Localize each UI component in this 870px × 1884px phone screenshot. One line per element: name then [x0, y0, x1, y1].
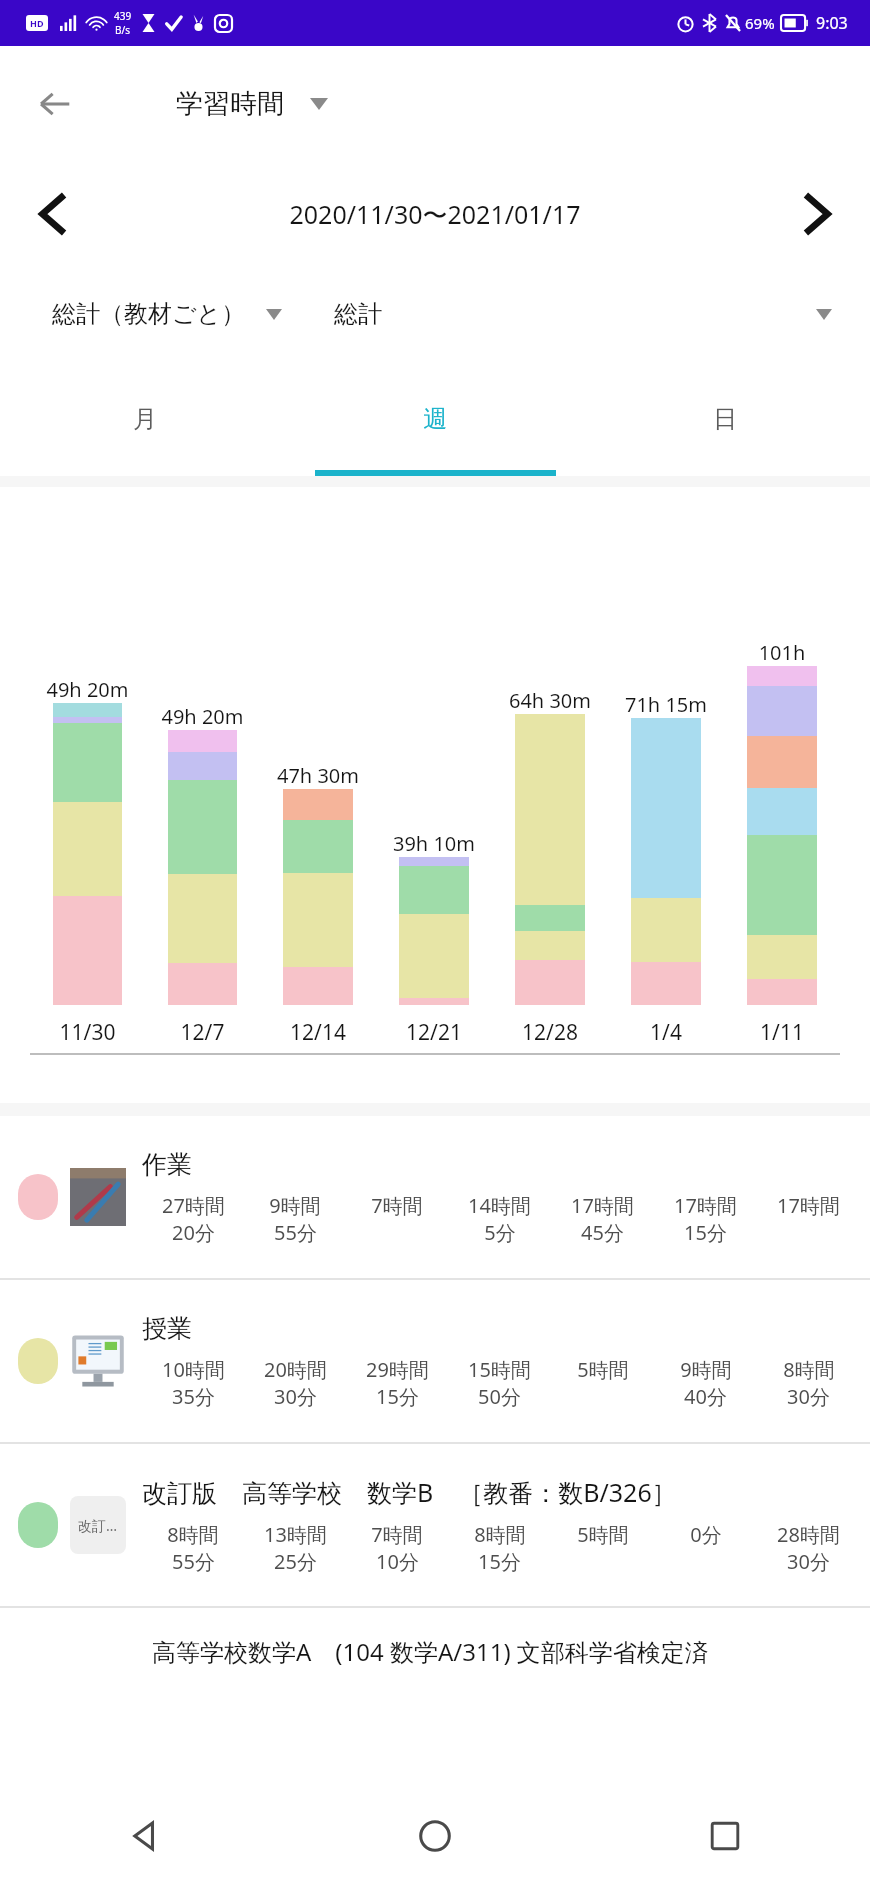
staticText: 55分 — [274, 1219, 317, 1246]
button[interactable]: Home — [290, 1788, 580, 1884]
staticText: 総計（教材ごと） — [52, 299, 246, 329]
staticText: 25分 — [274, 1548, 317, 1575]
staticText: 12/7 — [145, 1018, 260, 1047]
staticText: 30分 — [274, 1383, 317, 1410]
staticText: 28時間 — [777, 1521, 840, 1548]
button[interactable]: 総計（教材ごと） — [52, 299, 282, 329]
staticText: 39h 10m — [376, 830, 492, 857]
staticText: 15分 — [376, 1383, 419, 1410]
staticText: 高等学校数学A (104 数学A/311) 文部科学省検定済 — [152, 1635, 709, 1668]
staticText: 15分 — [478, 1548, 521, 1575]
staticText: 7時間 — [371, 1192, 423, 1219]
staticText: 改訂版 高等学校 数学B ［教番：数B/326］ — [142, 1475, 677, 1509]
staticText: HD — [30, 17, 44, 29]
staticText: 7時間 — [371, 1521, 423, 1548]
staticText: 17時間 — [674, 1192, 737, 1219]
staticText: 20時間 — [264, 1356, 327, 1383]
staticText: 8時間 — [783, 1356, 835, 1383]
staticText: 9時間 — [680, 1356, 732, 1383]
staticText: 授業 — [142, 1313, 192, 1344]
staticText: 49h 20m — [145, 703, 260, 730]
staticText: 10時間 — [162, 1356, 225, 1383]
staticText: 47h 30m — [260, 762, 376, 789]
staticText: 40分 — [684, 1383, 727, 1410]
button[interactable]: Back — [0, 1788, 290, 1884]
staticText: 8時間 — [474, 1521, 526, 1548]
button[interactable]: 改訂… — [0, 1444, 870, 1606]
staticText: 5時間 — [577, 1521, 629, 1548]
button[interactable]: 作業 — [0, 1116, 870, 1278]
staticText: 2020/11/30〜2021/01/17 — [289, 197, 581, 231]
staticText: 55分 — [172, 1548, 215, 1575]
staticText: 0分 — [690, 1521, 722, 1548]
staticText: 9時間 — [269, 1192, 321, 1219]
staticText: 45分 — [581, 1219, 624, 1246]
staticText: 30分 — [787, 1383, 830, 1410]
staticText: 35分 — [172, 1383, 215, 1410]
staticText: 10分 — [376, 1548, 419, 1575]
staticText: 月 — [133, 404, 157, 434]
staticText: 49h 20m — [30, 676, 145, 703]
button[interactable]: 授業 — [0, 1280, 870, 1442]
staticText: 8時間 — [167, 1521, 219, 1548]
staticText: 15時間 — [468, 1356, 531, 1383]
button[interactable]: Recents — [580, 1788, 870, 1884]
staticText: 439 — [114, 9, 132, 23]
staticText: 総計 — [334, 299, 382, 329]
button[interactable]: 総計 — [334, 299, 870, 329]
staticText: 改訂… — [78, 1516, 118, 1535]
button[interactable]: 月 — [0, 361, 290, 476]
staticText: B/s — [115, 23, 131, 37]
staticText: 29時間 — [366, 1356, 429, 1383]
staticText: 5分 — [484, 1219, 516, 1246]
staticText: 14時間 — [468, 1192, 531, 1219]
staticText: 69% — [745, 13, 775, 33]
staticText: 5時間 — [577, 1356, 629, 1383]
staticText: 12/21 — [376, 1018, 492, 1047]
button[interactable]: 学習時間 — [176, 87, 328, 121]
button[interactable]: 週 — [290, 361, 580, 476]
staticText: 64h 30m — [492, 687, 608, 714]
staticText: 50分 — [478, 1383, 521, 1410]
staticText: 1/4 — [608, 1018, 724, 1047]
button[interactable]: Back — [22, 72, 86, 136]
staticText: 13時間 — [264, 1521, 327, 1548]
staticText: 71h 15m — [608, 691, 724, 718]
staticText: 9:03 — [816, 12, 848, 34]
staticText: 12/28 — [492, 1018, 608, 1047]
staticText: 日 — [713, 404, 737, 434]
staticText: 週 — [423, 404, 447, 434]
staticText: 20分 — [172, 1219, 215, 1246]
button[interactable]: 日 — [580, 361, 870, 476]
staticText: 12/14 — [260, 1018, 376, 1047]
staticText: 作業 — [142, 1149, 192, 1180]
staticText: 30分 — [787, 1548, 830, 1575]
staticText: 学習時間 — [176, 87, 284, 121]
staticText: 17時間 — [571, 1192, 634, 1219]
staticText: 11/30 — [30, 1018, 145, 1047]
button[interactable]: Previous period — [16, 178, 88, 250]
button[interactable]: Next period — [782, 178, 854, 250]
staticText: 17時間 — [777, 1192, 840, 1219]
staticText: 1/11 — [724, 1018, 840, 1047]
staticText: 101h — [724, 639, 840, 666]
staticText: 27時間 — [162, 1192, 225, 1219]
staticText: 15分 — [684, 1219, 727, 1246]
